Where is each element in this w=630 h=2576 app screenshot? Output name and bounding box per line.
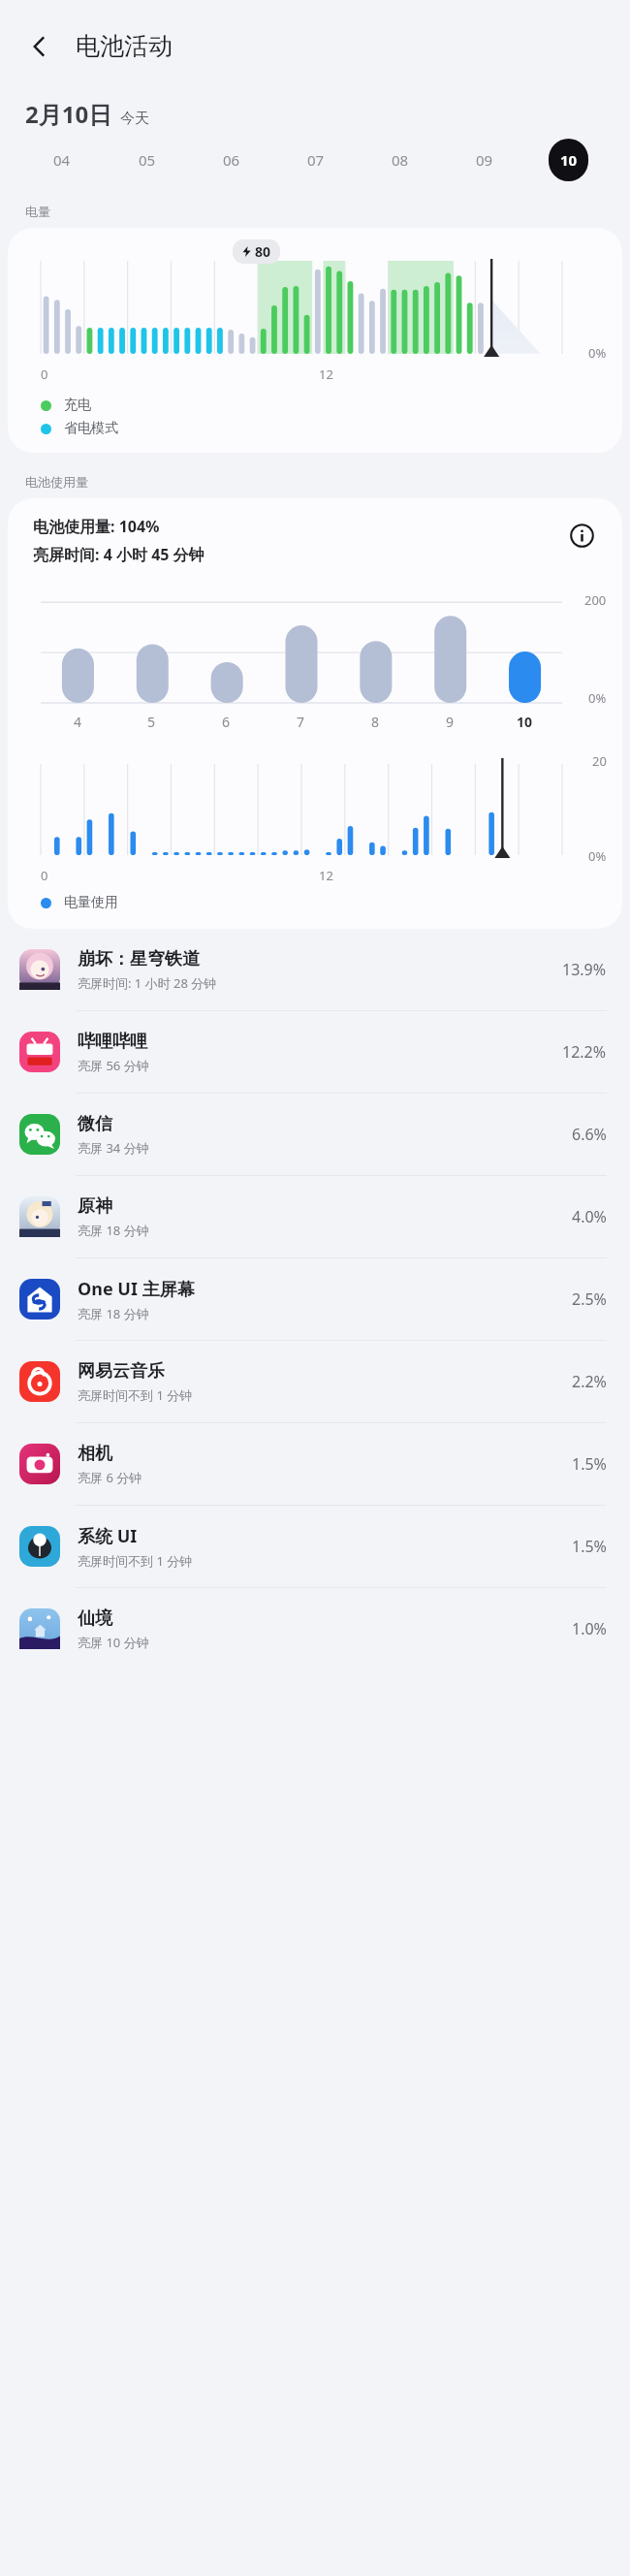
staticText: 07 xyxy=(307,150,325,170)
staticText: 0% xyxy=(588,344,607,362)
staticText: 12 xyxy=(319,366,333,383)
staticText: 今天 xyxy=(120,110,149,128)
staticText: 亮屏 56 分钟 xyxy=(78,1057,149,1074)
staticText: 8 xyxy=(371,713,380,731)
staticText: 10 xyxy=(560,150,578,170)
staticText: 哔哩哔哩 xyxy=(78,1031,147,1053)
staticText: 10 xyxy=(517,713,533,731)
button[interactable]: 08 xyxy=(358,134,442,186)
staticText: 亮屏 18 分钟 xyxy=(78,1305,149,1322)
button[interactable]: One UI 主屏幕 xyxy=(0,1258,630,1340)
staticText: 12.2% xyxy=(562,1041,607,1063)
staticText: 仙境 xyxy=(78,1607,112,1630)
staticText: 04 xyxy=(53,150,71,170)
staticText: 亮屏时间: 1 小时 28 分钟 xyxy=(78,974,217,992)
staticText: 亮屏时间不到 1 分钟 xyxy=(78,1552,193,1570)
staticText: 2.2% xyxy=(572,1371,607,1392)
staticText: 05 xyxy=(139,150,156,170)
button[interactable]: 原神 xyxy=(0,1176,630,1257)
staticText: 亮屏时间不到 1 分钟 xyxy=(78,1386,193,1404)
staticText: 2月10日 xyxy=(25,98,112,130)
staticText: 亮屏时间: 4 小时 45 分钟 xyxy=(33,544,205,565)
staticText: 12 xyxy=(319,867,333,884)
button[interactable]: 05 xyxy=(105,134,189,186)
staticText: 亮屏 18 分钟 xyxy=(78,1222,149,1239)
staticText: 微信 xyxy=(78,1113,112,1135)
button[interactable]: 系统 UI xyxy=(0,1506,630,1587)
staticText: 9 xyxy=(446,713,455,731)
button[interactable]: 网易云音乐 xyxy=(0,1341,630,1422)
button[interactable]: 10 xyxy=(526,134,611,186)
staticText: 5 xyxy=(147,713,156,731)
staticText: 1.5% xyxy=(572,1453,607,1475)
staticText: 系统 UI xyxy=(78,1524,138,1548)
staticText: 省电模式 xyxy=(64,420,118,437)
staticText: 充电 xyxy=(64,397,91,414)
staticText: 06 xyxy=(223,150,240,170)
staticText: 电池使用量: 104% xyxy=(33,516,160,537)
staticText: 4 xyxy=(74,713,82,731)
staticText: One UI 主屏幕 xyxy=(78,1277,195,1301)
staticText: 0 xyxy=(41,366,48,383)
staticText: 200 xyxy=(584,591,607,609)
button[interactable]: 06 xyxy=(189,134,273,186)
staticText: 13.9% xyxy=(562,959,607,980)
staticText: 电量使用 xyxy=(64,894,118,911)
button[interactable]: 哔哩哔哩 xyxy=(0,1011,630,1093)
staticText: 80 xyxy=(255,242,271,261)
button[interactable]: 09 xyxy=(442,134,526,186)
staticText: 2.5% xyxy=(572,1288,607,1310)
staticText: 0 xyxy=(41,867,48,884)
staticText: 08 xyxy=(392,150,409,170)
staticText: 亮屏 34 分钟 xyxy=(78,1139,149,1157)
staticText: 7 xyxy=(297,713,305,731)
staticText: 亮屏 10 分钟 xyxy=(78,1634,149,1651)
button[interactable]: 返回 xyxy=(14,20,66,73)
staticText: 电量 xyxy=(25,204,50,219)
button[interactable]: 07 xyxy=(273,134,358,186)
staticText: 09 xyxy=(476,150,493,170)
staticText: 20 xyxy=(592,752,607,770)
staticText: 网易云音乐 xyxy=(78,1360,165,1383)
staticText: 相机 xyxy=(78,1443,112,1465)
staticText: 电池使用量 xyxy=(25,474,88,490)
staticText: 1.0% xyxy=(572,1618,607,1639)
staticText: 0% xyxy=(588,689,607,707)
staticText: 崩坏：星穹铁道 xyxy=(78,948,200,970)
button[interactable]: 0% xyxy=(8,228,622,453)
staticText: 0% xyxy=(588,847,607,865)
staticText: 1.5% xyxy=(572,1536,607,1557)
button[interactable]: 微信 xyxy=(0,1094,630,1175)
staticText: 6.6% xyxy=(572,1124,607,1145)
staticText: 亮屏 6 分钟 xyxy=(78,1469,142,1486)
button[interactable]: 仙境 xyxy=(0,1588,630,1670)
button[interactable]: 崩坏：星穹铁道 xyxy=(0,929,630,1010)
staticText: 6 xyxy=(222,713,231,731)
staticText: 4.0% xyxy=(572,1206,607,1227)
button[interactable]: 04 xyxy=(19,134,105,186)
button[interactable]: 信息 xyxy=(562,516,601,555)
button[interactable]: 相机 xyxy=(0,1423,630,1505)
staticText: 电池活动 xyxy=(76,31,173,61)
staticText: 原神 xyxy=(78,1195,112,1218)
